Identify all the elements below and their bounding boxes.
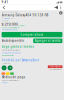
staticText: Llega gratis el martes bbox=[2, 45, 34, 48]
button[interactable]: Add to favorites bbox=[59, 11, 62, 14]
staticText: Nuevo | +500 vendidos bbox=[2, 11, 19, 13]
button[interactable]: Vendido por SamsungStore bbox=[2, 58, 40, 62]
button[interactable]: More options bbox=[59, 4, 63, 10]
staticText: Comprar ahora bbox=[20, 33, 43, 36]
button[interactable]: Ver los medios de pago bbox=[2, 29, 18, 30]
staticText: 21% OFF bbox=[18, 25, 24, 27]
staticText: Ver los medios de pago bbox=[2, 29, 18, 30]
staticText: 9:41 bbox=[2, 0, 9, 4]
staticText: Hasta 12 cuotas sin interés bbox=[2, 79, 20, 81]
button[interactable]: Comprar ahora bbox=[2, 32, 62, 37]
staticText: Vendido por SamsungStore bbox=[2, 58, 40, 62]
button[interactable]: Back bbox=[1, 4, 7, 10]
staticText: Medios de pago bbox=[2, 75, 26, 79]
staticText: en 12x $ 18.333 sin interés bbox=[2, 27, 20, 29]
staticText: +10mil ventas bbox=[2, 62, 11, 64]
staticText: Devolución gratis bbox=[2, 55, 14, 56]
staticText: ✓ bbox=[3, 66, 5, 69]
staticText: ★ bbox=[9, 66, 11, 69]
staticText: Ver más formas de entrega bbox=[2, 52, 21, 54]
staticText: $ 219.999 bbox=[2, 22, 18, 27]
staticText: ★★★★★ bbox=[4, 17, 9, 19]
staticText: Agregar al carrito bbox=[35, 39, 61, 42]
staticText: 4.8 bbox=[2, 17, 4, 19]
staticText: ÚLTIMAS UNIDADES bbox=[49, 66, 62, 68]
staticText: (1.285) bbox=[9, 17, 13, 19]
button[interactable]: Agregar al carrito bbox=[33, 38, 62, 43]
staticText: Retirá gratis a partir del lunes bbox=[2, 49, 21, 51]
button[interactable]: Ver más bbox=[2, 82, 8, 84]
staticText: Garantía de fábrica bbox=[49, 69, 62, 70]
staticText: Ver más bbox=[2, 82, 8, 84]
staticText: Samsung Galaxy A54 5G 128 GB bbox=[2, 13, 49, 17]
button[interactable]: Share bbox=[54, 4, 59, 10]
staticText: Stock disponible bbox=[2, 39, 25, 42]
staticText: $ 279.999 bbox=[2, 20, 9, 22]
button[interactable]: Ver más formas de entrega bbox=[2, 52, 21, 54]
